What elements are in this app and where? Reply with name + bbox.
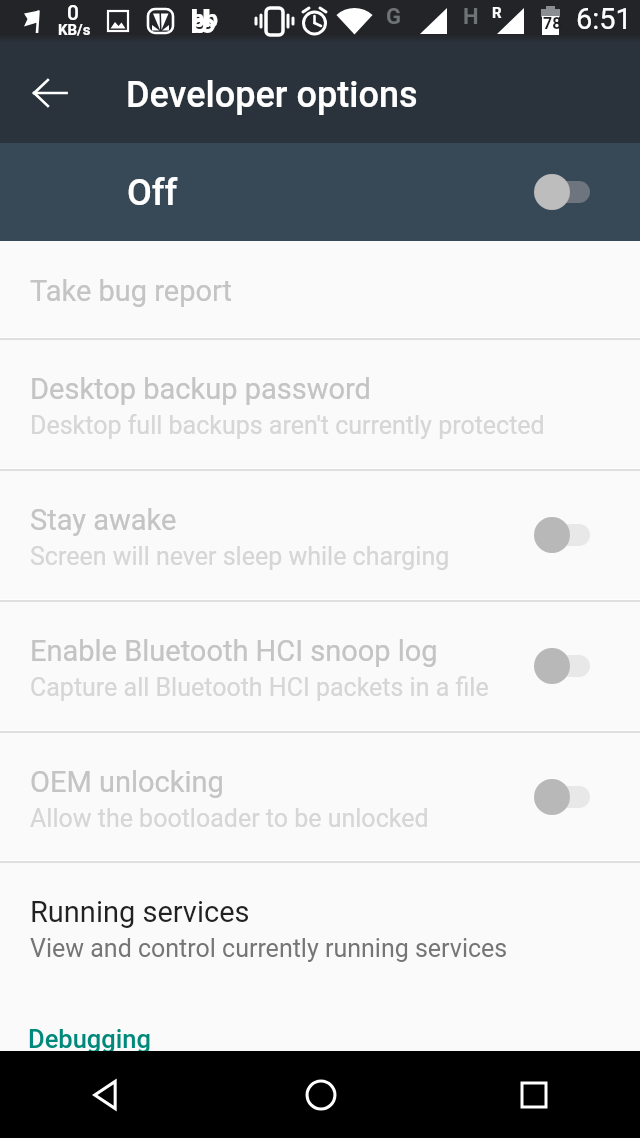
staticText: Allow the bootloader to be unlocked: [30, 804, 429, 833]
staticText: Developer options: [126, 74, 418, 116]
staticText: OEM unlocking: [30, 765, 224, 799]
button[interactable]: Stay awake: [0, 471, 640, 599]
button[interactable]: Running services: [0, 863, 640, 983]
staticText: Off: [127, 172, 178, 214]
staticText: 0: [67, 1, 79, 26]
staticText: G: [386, 4, 401, 30]
button[interactable]: OEM unlocking: [0, 733, 640, 860]
staticText: 78: [543, 14, 562, 33]
button[interactable]: OEM unlocking toggle: [534, 733, 590, 860]
button[interactable]: Enable Bluetooth HCI snoop log: [0, 602, 640, 730]
staticText: Take bug report: [30, 274, 232, 308]
button[interactable]: Recents: [497, 1058, 571, 1132]
button[interactable]: Desktop backup password: [0, 340, 640, 468]
staticText: View and control currently running servi…: [30, 934, 508, 963]
staticText: Enable Bluetooth HCI snoop log: [30, 634, 438, 668]
button[interactable]: Back: [70, 1058, 144, 1132]
staticText: bb: [191, 5, 219, 33]
staticText: Capture all Bluetooth HCI packets in a f…: [30, 673, 489, 702]
staticText: Debugging: [28, 1024, 151, 1054]
staticText: KB/s: [58, 21, 91, 39]
button[interactable]: Take bug report: [0, 241, 640, 337]
button[interactable]: Stay awake toggle: [534, 471, 590, 599]
button[interactable]: Off: [0, 143, 640, 241]
staticText: H: [463, 4, 479, 30]
button[interactable]: Home: [284, 1058, 358, 1132]
staticText: 6:51: [576, 2, 632, 36]
staticText: Stay awake: [30, 503, 177, 537]
staticText: Screen will never sleep while charging: [30, 542, 450, 571]
staticText: Desktop full backups aren't currently pr…: [30, 411, 545, 440]
staticText: Running services: [30, 895, 250, 929]
staticText: Desktop backup password: [30, 372, 371, 406]
button[interactable]: Debugging: [0, 983, 640, 1051]
staticText: R: [492, 4, 502, 22]
button[interactable]: Enable Bluetooth HCI snoop log toggle: [534, 602, 590, 730]
button[interactable]: Back: [20, 63, 80, 123]
